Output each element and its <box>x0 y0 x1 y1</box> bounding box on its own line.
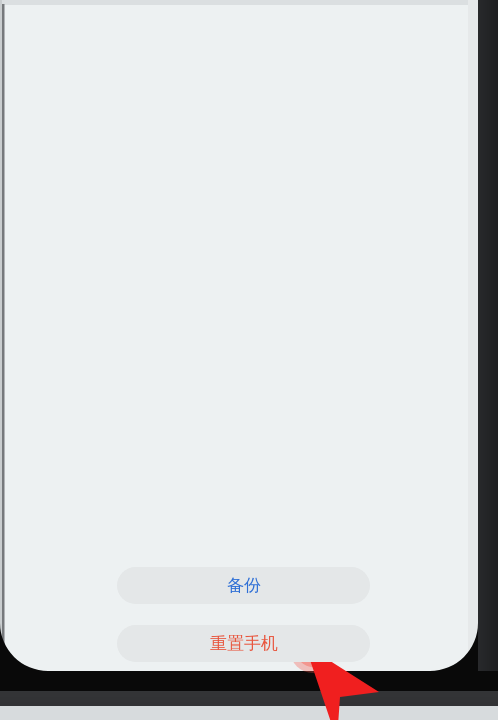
button[interactable]: 备份 <box>117 567 370 604</box>
staticText: 重置手机 <box>210 633 278 654</box>
staticText: 备份 <box>227 575 261 596</box>
button[interactable]: 重置手机 <box>117 625 370 662</box>
